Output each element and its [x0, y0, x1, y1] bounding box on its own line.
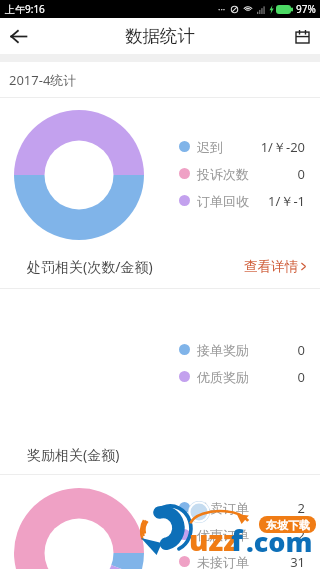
staticText: 1/￥-20 [260, 138, 305, 156]
staticText: 优质奖励 [197, 369, 249, 385]
staticText: 31 [290, 553, 305, 569]
staticText: ··· [218, 3, 226, 15]
staticText: .com [246, 523, 313, 560]
staticText: 投诉次数 [197, 166, 249, 182]
staticText: 东坡下载 [266, 518, 310, 532]
staticText: 1/￥-1 [268, 192, 305, 210]
staticText: 查看详情 [244, 258, 298, 275]
staticText: 优惠订单 [197, 527, 249, 543]
staticText: 0 [297, 165, 305, 183]
staticText: uzz [189, 520, 238, 559]
button[interactable]: Back [0, 18, 36, 54]
staticText: 0 [297, 368, 305, 386]
staticText: 上午9:16 [5, 2, 45, 16]
other: Chart [14, 110, 144, 240]
staticText: 迟到 [197, 139, 223, 155]
staticText: 奖励相关(金额) [27, 445, 120, 464]
staticText: 数据统计 [125, 25, 195, 47]
other: Chart [14, 488, 144, 569]
staticText: 97% [296, 2, 316, 16]
button[interactable]: Calendar [284, 18, 320, 54]
staticText: 2017-4统计 [9, 71, 77, 89]
staticText: 未接订单 [197, 554, 249, 569]
button[interactable]: 查看详情 [244, 254, 307, 279]
staticText: 2 [297, 499, 305, 517]
staticText: 处罚相关(次数/金额) [27, 257, 153, 276]
staticText: 外卖订单 [197, 500, 249, 516]
staticText: 接单奖励 [197, 342, 249, 358]
staticText: 2 [297, 526, 305, 544]
staticText: 订单回收 [197, 193, 249, 209]
staticText: 0 [297, 341, 305, 359]
staticText: f [231, 520, 243, 559]
